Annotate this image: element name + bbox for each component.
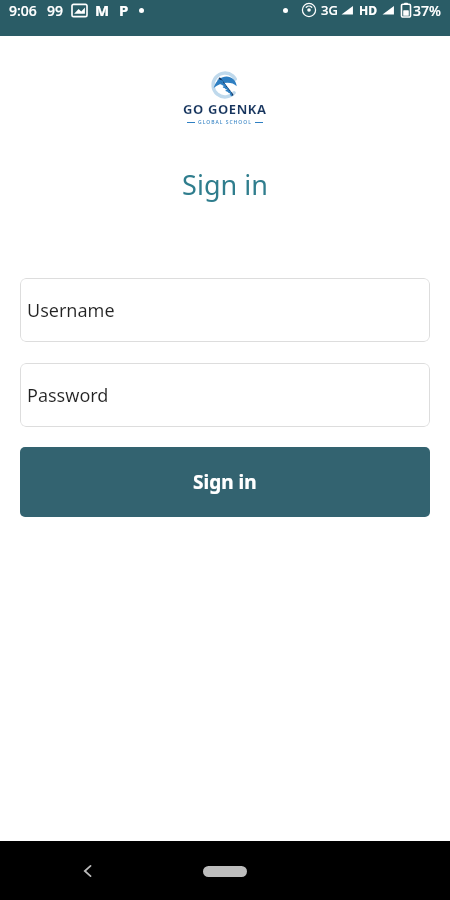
staticText: GLOBAL SCHOOL	[198, 119, 252, 126]
staticText: 9:06	[9, 1, 37, 20]
staticText: 99	[47, 1, 64, 20]
staticText: 3G	[321, 1, 338, 19]
button[interactable]: Home	[190, 856, 260, 886]
button[interactable]: Password	[20, 363, 430, 427]
button[interactable]: Username	[20, 278, 430, 342]
staticText: Password	[27, 383, 109, 408]
button[interactable]: Back	[68, 851, 108, 891]
staticText: GO GOENKA	[183, 100, 267, 118]
staticText: Sign in	[0, 166, 450, 203]
staticText: Sign in	[193, 469, 257, 495]
staticText: Username	[27, 298, 115, 323]
staticText: P	[119, 0, 129, 20]
staticText: 37%	[413, 1, 441, 20]
staticText: HD	[359, 2, 377, 18]
staticText: M	[95, 0, 110, 20]
button[interactable]: Sign in	[20, 447, 430, 517]
